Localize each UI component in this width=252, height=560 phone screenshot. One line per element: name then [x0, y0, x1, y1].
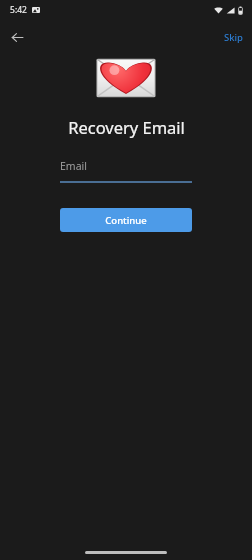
staticText: Skip — [224, 31, 243, 44]
staticText: Continue — [105, 214, 147, 227]
button[interactable]: Continue — [60, 208, 192, 232]
button[interactable]: Back — [4, 24, 30, 50]
staticText: Email — [60, 159, 87, 173]
button[interactable]: Skip — [220, 27, 247, 48]
button[interactable]: Email — [60, 156, 192, 183]
staticText: Recovery Email — [68, 116, 185, 138]
staticText: 5:42 — [10, 4, 27, 16]
